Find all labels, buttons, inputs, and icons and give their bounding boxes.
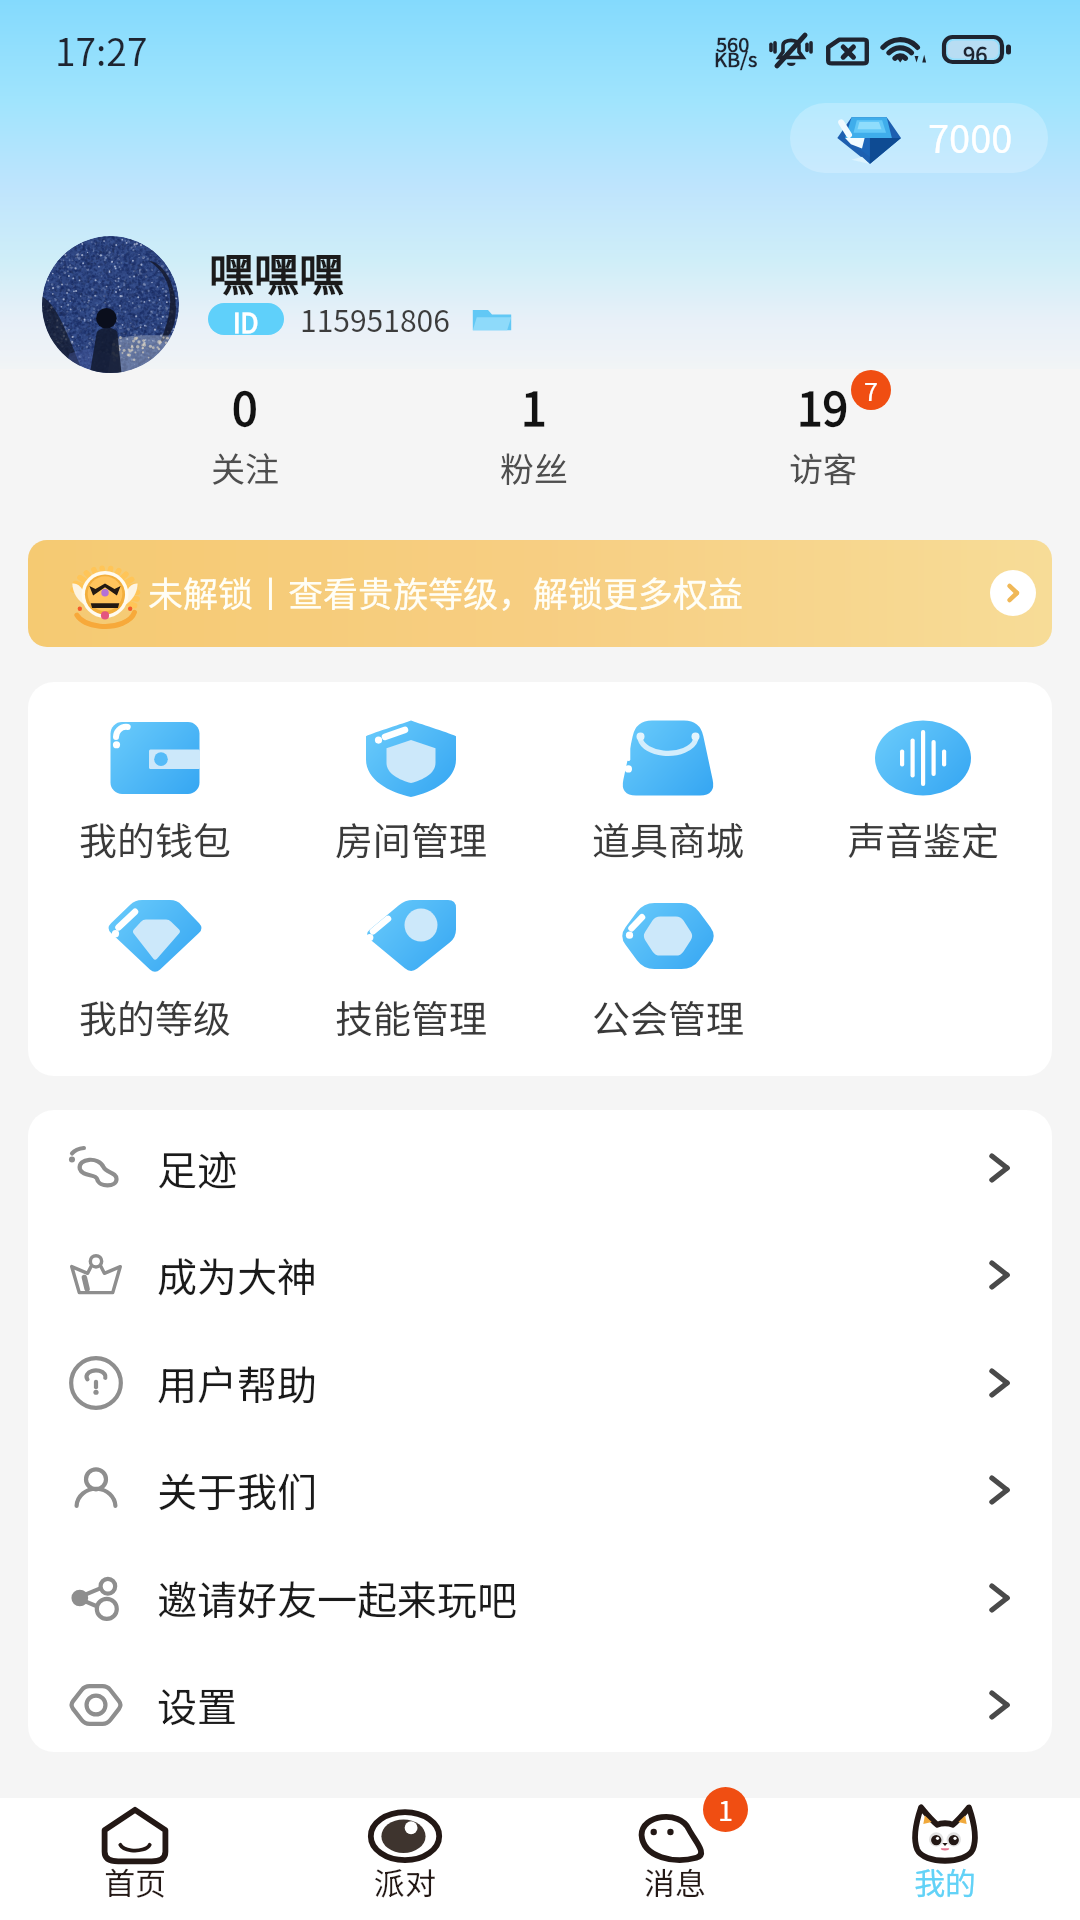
staticText: 115951806 [300, 297, 450, 340]
button[interactable]: 用户帮助 [28, 1330, 1052, 1436]
staticText: 派对 [374, 1859, 436, 1904]
button[interactable]: 房间管理 [287, 695, 535, 845]
staticText: 邀请好友一起来玩吧 [157, 1569, 517, 1627]
staticText: 房间管理 [335, 811, 488, 866]
staticText: 成为大神 [157, 1246, 317, 1304]
staticText: 1 [718, 1790, 733, 1829]
staticText: 0 [232, 373, 258, 440]
staticText: 公会管理 [592, 989, 745, 1044]
staticText: 7 [864, 372, 878, 408]
button[interactable]: 首页 [0, 1796, 270, 1918]
staticText: 我的钱包 [79, 811, 232, 866]
button[interactable]: 我的钱包 [31, 695, 279, 845]
staticText: 设置 [157, 1676, 237, 1734]
button[interactable]: 我的等级 [31, 873, 279, 1023]
button[interactable]: Diamonds 7000 [790, 103, 1048, 173]
button[interactable]: 设置 [28, 1652, 1052, 1752]
staticText: 未解锁丨查看贵族等级，解锁更多权益 [148, 566, 744, 617]
staticText: 技能管理 [335, 989, 488, 1044]
staticText: 我的等级 [79, 989, 232, 1044]
button[interactable]: 派对 [270, 1796, 540, 1918]
button[interactable]: 关于我们 [28, 1437, 1052, 1543]
button[interactable]: Avatar [42, 236, 179, 373]
button[interactable]: 成为大神 [28, 1222, 1052, 1328]
staticText: KB/s [714, 44, 758, 73]
staticText: 粉丝 [500, 443, 568, 492]
button[interactable]: 声音鉴定 [799, 695, 1047, 845]
staticText: 消息 [644, 1859, 706, 1904]
button[interactable]: 技能管理 [287, 873, 535, 1023]
staticText: 17:27 [55, 23, 148, 77]
button[interactable]: 1 [424, 372, 644, 500]
button[interactable]: 我的 [810, 1796, 1080, 1918]
staticText: 我的 [914, 1859, 976, 1904]
staticText: 访客 [789, 443, 857, 492]
staticText: 7000 [928, 109, 1013, 164]
button[interactable]: 道具商城 [544, 695, 792, 845]
staticText: 声音鉴定 [847, 811, 1000, 866]
staticText: 用户帮助 [157, 1354, 317, 1412]
staticText: 首页 [104, 1859, 166, 1904]
button[interactable]: 1 [540, 1796, 810, 1918]
staticText: 关于我们 [157, 1461, 317, 1519]
button[interactable]: 19 [713, 372, 933, 500]
button[interactable]: Copy ID [472, 305, 512, 333]
button[interactable]: 0 [135, 372, 355, 500]
staticText: 560 [716, 29, 750, 58]
staticText: 嘿嘿嘿 [209, 239, 345, 304]
staticText: ID [233, 303, 259, 335]
staticText: 19 [797, 373, 849, 440]
staticText: 足迹 [157, 1139, 237, 1197]
staticText: 关注 [211, 443, 279, 492]
button[interactable]: 足迹 [28, 1115, 1052, 1221]
staticText: 1 [521, 373, 547, 440]
staticText: 道具商城 [592, 811, 745, 866]
button[interactable]: 公会管理 [544, 873, 792, 1023]
button[interactable]: 邀请好友一起来玩吧 [28, 1545, 1052, 1651]
staticText: 96 [963, 37, 988, 62]
button[interactable]: 未解锁丨查看贵族等级，解锁更多权益 [28, 540, 1052, 647]
